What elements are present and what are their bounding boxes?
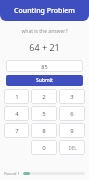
staticText: 9 [70, 127, 74, 135]
button[interactable]: Delete [59, 140, 85, 155]
staticText: 4 [15, 110, 19, 118]
staticText: 2 [42, 93, 46, 101]
staticText: Round 1 [4, 171, 20, 176]
staticText: 64 + 21 [29, 41, 60, 53]
button[interactable]: 0 [31, 140, 57, 155]
staticText: Submit [36, 77, 53, 84]
button[interactable]: Submit [6, 75, 83, 86]
button[interactable]: 3 [59, 89, 85, 104]
staticText: 3 [70, 93, 74, 101]
button[interactable]: 8 [31, 123, 57, 138]
staticText: 85 [41, 63, 48, 70]
button[interactable]: 9 [59, 123, 85, 138]
staticText: 0 [42, 144, 46, 152]
button[interactable]: 85 [6, 60, 83, 72]
staticText: what is the answer? [21, 28, 68, 35]
button[interactable]: 2 [31, 89, 57, 104]
staticText: 8 [42, 127, 46, 135]
staticText: 7 [15, 127, 19, 135]
staticText: Counting Problem [14, 6, 75, 16]
staticText: 1 [15, 93, 19, 101]
button[interactable]: 4 [4, 106, 29, 121]
button[interactable]: 6 [59, 106, 85, 121]
button[interactable]: 7 [4, 123, 29, 138]
button[interactable]: 1 [4, 89, 29, 104]
staticText: 5 [42, 110, 46, 118]
staticText: 6 [70, 110, 74, 118]
staticText: DEL [68, 145, 77, 151]
button[interactable]: 5 [31, 106, 57, 121]
